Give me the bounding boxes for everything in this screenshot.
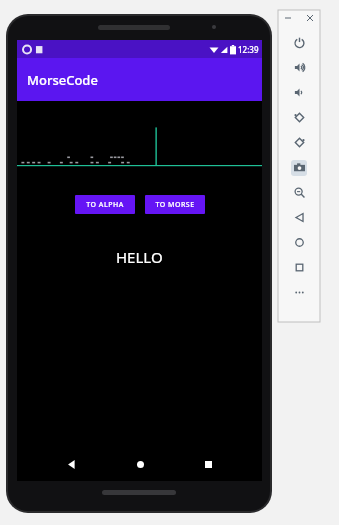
staticText: TO ALPHA <box>86 200 124 210</box>
button[interactable]: MorseCode <box>17 58 262 101</box>
button[interactable]: Home <box>286 230 312 255</box>
button[interactable]: Back <box>286 205 312 230</box>
staticText: HELLO <box>116 247 163 267</box>
staticText: 12:39 <box>238 44 259 55</box>
button[interactable]: Zoom <box>286 180 312 205</box>
button[interactable]: Volume down <box>286 80 312 105</box>
button[interactable]: Take screenshot <box>286 155 312 180</box>
button[interactable]: Recent apps <box>193 449 223 479</box>
button[interactable]: Close <box>306 14 314 22</box>
button[interactable]: Volume up <box>286 55 312 80</box>
staticText: MorseCode <box>27 71 98 89</box>
button[interactable]: Power <box>286 30 312 55</box>
button[interactable]: TO ALPHA <box>75 195 135 214</box>
staticText: TO MORSE <box>155 200 195 210</box>
button[interactable]: Overview <box>286 255 312 280</box>
button[interactable]: Rotate left <box>286 105 312 130</box>
button[interactable]: TO MORSE <box>145 195 205 214</box>
button[interactable]: Minimize <box>284 14 292 22</box>
button[interactable]: Home <box>125 449 155 479</box>
button[interactable]: Rotate right <box>286 130 312 155</box>
button[interactable]: More <box>286 280 312 305</box>
button[interactable]: Back <box>56 449 86 479</box>
